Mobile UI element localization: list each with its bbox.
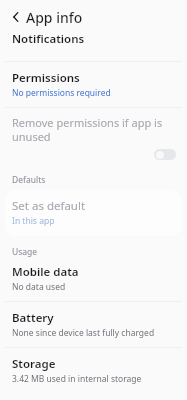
- staticText: In this app: [12, 215, 55, 227]
- staticText: Notifications: [12, 34, 85, 47]
- staticText: No permissions required: [12, 87, 111, 99]
- staticText: Usage: [12, 246, 38, 258]
- button[interactable]: Storage: [0, 348, 187, 393]
- staticText: Storage: [12, 356, 56, 372]
- button[interactable]: Back: [7, 8, 25, 26]
- button[interactable]: Set as default: [5, 190, 182, 236]
- button[interactable]: Mobile data: [0, 261, 187, 301]
- staticText: Battery: [12, 310, 54, 326]
- button[interactable]: Battery: [0, 302, 187, 347]
- staticText: No data used: [12, 281, 66, 293]
- staticText: None since device last fully charged: [12, 327, 155, 339]
- other: Remove permissions if app is unused togg…: [154, 149, 176, 160]
- button[interactable]: Notifications: [0, 34, 187, 55]
- staticText: 3.42 MB used in internal storage: [12, 373, 142, 385]
- staticText: Remove permissions if app is unused: [12, 115, 163, 144]
- button[interactable]: Remove permissions if app is unused: [0, 108, 187, 166]
- staticText: App info: [26, 8, 83, 27]
- staticText: Permissions: [12, 70, 80, 86]
- staticText: Set as default: [12, 198, 86, 214]
- staticText: Mobile data: [12, 264, 79, 280]
- button[interactable]: Permissions: [0, 62, 187, 107]
- staticText: Defaults: [12, 174, 46, 186]
